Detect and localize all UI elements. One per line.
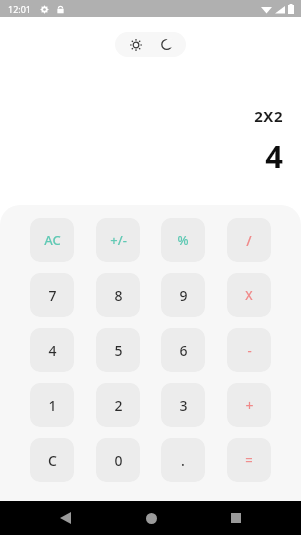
staticText: 12:01 — [8, 3, 32, 15]
staticText: 2X2 — [254, 106, 283, 126]
staticText: X — [245, 287, 253, 303]
button[interactable]: = — [227, 438, 271, 482]
button[interactable]: 5 — [96, 328, 140, 372]
button[interactable]: 4 — [30, 328, 74, 372]
button[interactable]: + — [227, 383, 271, 427]
button[interactable]: Back — [45, 501, 85, 535]
button[interactable]: Recent apps — [216, 501, 256, 535]
button[interactable]: / — [227, 218, 271, 262]
staticText: +/- — [110, 231, 127, 249]
staticText: 1 — [48, 396, 57, 415]
button[interactable]: C — [30, 438, 74, 482]
button[interactable]: 8 — [96, 273, 140, 317]
button[interactable]: . — [161, 438, 205, 482]
staticText: 8 — [114, 286, 123, 305]
button[interactable]: +/- — [96, 218, 140, 262]
staticText: 9 — [179, 286, 188, 305]
staticText: 4 — [48, 341, 57, 360]
button[interactable]: 6 — [161, 328, 205, 372]
button[interactable]: X — [227, 273, 271, 317]
button[interactable]: Home — [131, 501, 171, 535]
staticText: . — [181, 451, 185, 470]
staticText: % — [177, 231, 189, 249]
button[interactable]: - — [227, 328, 271, 372]
staticText: / — [246, 231, 252, 250]
staticText: 6 — [179, 341, 188, 360]
staticText: 0 — [114, 451, 123, 470]
staticText: = — [245, 451, 253, 469]
staticText: 5 — [114, 341, 123, 360]
button[interactable]: 2 — [96, 383, 140, 427]
button[interactable]: 3 — [161, 383, 205, 427]
staticText: AC — [44, 231, 61, 249]
staticText: 7 — [48, 286, 57, 305]
button[interactable]: 1 — [30, 383, 74, 427]
staticText: 3 — [179, 396, 188, 415]
button[interactable]: Dark theme — [151, 32, 181, 57]
staticText: 2 — [114, 396, 123, 415]
button[interactable]: % — [161, 218, 205, 262]
staticText: - — [247, 341, 252, 359]
staticText: + — [245, 396, 254, 415]
button[interactable]: 0 — [96, 438, 140, 482]
button[interactable]: AC — [30, 218, 74, 262]
button[interactable]: Light theme — [121, 32, 151, 57]
staticText: 4 — [265, 135, 283, 177]
button[interactable]: 9 — [161, 273, 205, 317]
staticText: C — [48, 451, 57, 470]
button[interactable]: 7 — [30, 273, 74, 317]
